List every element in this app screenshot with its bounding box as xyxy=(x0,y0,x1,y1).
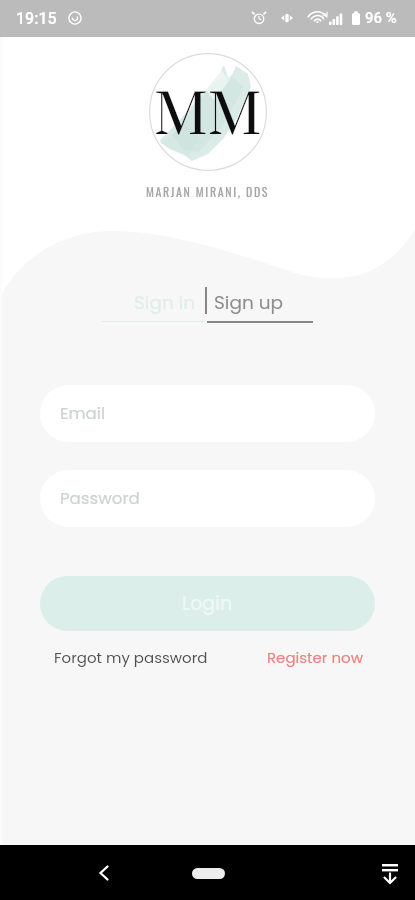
staticText: 19:15 xyxy=(16,9,57,28)
button[interactable]: Home xyxy=(176,856,240,890)
staticText: Login xyxy=(182,590,233,617)
button[interactable]: Password xyxy=(40,470,375,527)
staticText: Register now xyxy=(267,647,363,668)
staticText: Sign up xyxy=(214,290,284,316)
staticText: Password xyxy=(60,487,140,510)
button[interactable]: Email xyxy=(40,385,375,442)
staticText: Email xyxy=(60,402,105,425)
button[interactable]: Sign up xyxy=(207,290,313,323)
staticText: 96 % xyxy=(365,9,397,27)
button[interactable]: Back xyxy=(87,856,121,890)
button[interactable]: Login xyxy=(40,576,375,631)
button[interactable]: Sign in xyxy=(102,290,205,322)
staticText: Forgot my password xyxy=(54,647,208,668)
staticText: Sign in xyxy=(134,290,196,316)
staticText: MARJAN MIRANI, DDS xyxy=(146,183,270,201)
button[interactable]: Register now xyxy=(267,647,363,668)
button[interactable]: Forgot my password xyxy=(54,647,208,668)
staticText: MM xyxy=(154,81,262,153)
button[interactable]: Hide keyboard xyxy=(373,856,407,890)
